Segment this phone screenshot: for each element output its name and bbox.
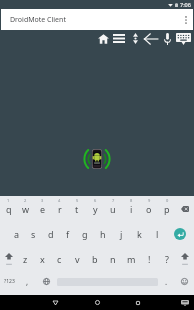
- staticText: b: [92, 253, 98, 265]
- staticText: f: [66, 228, 70, 240]
- staticText: !: [148, 253, 151, 265]
- staticText: l: [156, 228, 159, 240]
- button[interactable]: Language: [36, 271, 57, 292]
- button[interactable]: Home: [83, 295, 112, 310]
- staticText: DroidMote Client: [10, 15, 66, 25]
- button[interactable]: Backspace: [176, 196, 194, 221]
- button[interactable]: n: [104, 246, 122, 271]
- staticText: h: [100, 228, 106, 240]
- staticText: ,: [26, 276, 29, 287]
- button[interactable]: j: [112, 221, 130, 246]
- button[interactable]: Voice input: [159, 30, 175, 47]
- staticText: j: [120, 228, 123, 240]
- button[interactable]: Home: [95, 30, 111, 47]
- staticText: z: [23, 253, 28, 265]
- staticText: 8: [130, 198, 133, 203]
- staticText: i: [130, 203, 133, 215]
- staticText: q: [6, 203, 12, 215]
- staticText: c: [57, 253, 62, 265]
- button[interactable]: c: [51, 246, 68, 271]
- button[interactable]: k: [130, 221, 148, 246]
- button[interactable]: ?: [158, 246, 176, 271]
- button[interactable]: w: [17, 196, 34, 221]
- staticText: t: [75, 203, 79, 215]
- staticText: 1: [7, 198, 10, 203]
- staticText: g: [82, 228, 88, 240]
- button[interactable]: a: [8, 221, 25, 246]
- staticText: 6: [94, 198, 97, 203]
- button[interactable]: d: [42, 221, 59, 246]
- staticText: d: [48, 228, 54, 240]
- button[interactable]: !: [140, 246, 158, 271]
- button[interactable]: q: [0, 196, 17, 221]
- staticText: y: [93, 203, 98, 215]
- button[interactable]: Menu: [111, 30, 127, 47]
- button[interactable]: Emoji: [175, 271, 194, 292]
- button[interactable]: m: [122, 246, 140, 271]
- staticText: 7:06: [180, 1, 191, 8]
- staticText: o: [146, 203, 152, 215]
- button[interactable]: x: [34, 246, 51, 271]
- staticText: ?: [165, 253, 169, 265]
- button[interactable]: ?123: [0, 271, 19, 292]
- button[interactable]: r: [51, 196, 68, 221]
- button[interactable]: Swap vertical: [127, 30, 143, 47]
- staticText: 3: [41, 198, 44, 203]
- staticText: 2: [24, 198, 27, 203]
- button[interactable]: .: [158, 271, 175, 292]
- staticText: k: [137, 228, 142, 240]
- button[interactable]: Keyboard: [175, 30, 191, 47]
- button[interactable]: Shift: [0, 246, 17, 271]
- staticText: v: [75, 253, 80, 265]
- button[interactable]: Back: [143, 30, 159, 47]
- staticText: .: [165, 276, 168, 287]
- staticText: 7: [112, 198, 115, 203]
- staticText: e: [40, 203, 46, 215]
- button[interactable]: ,: [19, 271, 36, 292]
- staticText: p: [164, 203, 170, 215]
- button[interactable]: l: [148, 221, 166, 246]
- button[interactable]: v: [68, 246, 86, 271]
- staticText: ?123: [4, 278, 15, 285]
- button[interactable]: o: [140, 196, 158, 221]
- button[interactable]: s: [25, 221, 42, 246]
- button[interactable]: h: [94, 221, 112, 246]
- button[interactable]: Back: [41, 295, 70, 310]
- button[interactable]: y: [86, 196, 104, 221]
- button[interactable]: u: [104, 196, 122, 221]
- button[interactable]: p: [158, 196, 176, 221]
- button[interactable]: Space: [57, 271, 158, 292]
- button[interactable]: Shift: [176, 246, 194, 271]
- staticText: r: [58, 203, 62, 215]
- button[interactable]: Recents: [123, 295, 152, 310]
- button[interactable]: g: [76, 221, 94, 246]
- staticText: 0: [166, 198, 169, 203]
- button[interactable]: t: [68, 196, 86, 221]
- staticText: x: [40, 253, 45, 265]
- button[interactable]: f: [59, 221, 76, 246]
- button[interactable]: i: [122, 196, 140, 221]
- button[interactable]: Enter: [166, 221, 194, 246]
- button[interactable]: Hide keyboard: [176, 295, 194, 310]
- button[interactable]: e: [34, 196, 51, 221]
- button[interactable]: z: [17, 246, 34, 271]
- button[interactable]: More options: [179, 9, 193, 30]
- staticText: u: [110, 203, 116, 215]
- staticText: 5: [76, 198, 79, 203]
- staticText: w: [22, 203, 30, 215]
- staticText: a: [14, 228, 20, 240]
- staticText: 9: [148, 198, 151, 203]
- staticText: n: [110, 253, 116, 265]
- staticText: m: [127, 253, 136, 265]
- staticText: 4: [58, 198, 61, 203]
- button[interactable]: b: [86, 246, 104, 271]
- staticText: s: [31, 228, 36, 240]
